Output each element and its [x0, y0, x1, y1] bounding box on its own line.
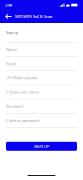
button[interactable]: Name: [6, 43, 77, 57]
button[interactable]: Email: [6, 57, 77, 71]
button[interactable]: SIGN UP: [6, 142, 77, 151]
staticText: 2:48: [5, 2, 12, 8]
staticText: Password: [6, 103, 23, 109]
staticText: Email: [6, 61, 16, 66]
staticText: Sign up: [6, 30, 18, 35]
button[interactable]: Back: [2, 10, 15, 23]
button[interactable]: Choose user name: [6, 85, 77, 99]
staticText: Name: [6, 47, 17, 52]
button[interactable]: +91 Phone number: [6, 71, 77, 85]
button[interactable]: Password: [6, 99, 77, 114]
staticText: SIGN UP: [34, 144, 49, 149]
button[interactable]: Confirm password: [6, 114, 77, 128]
staticText: +91 Phone number: [6, 75, 38, 80]
staticText: Confirm password: [6, 118, 39, 123]
staticText: Choose user name: [6, 89, 39, 95]
staticText: MIT-WPU SoCB Scan: [15, 14, 53, 19]
